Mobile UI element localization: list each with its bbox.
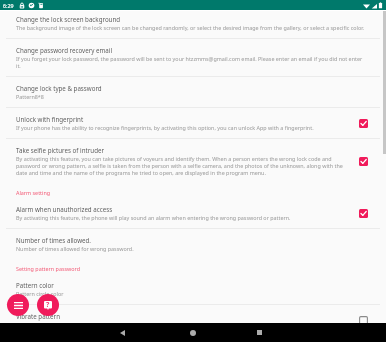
button[interactable]: Menu xyxy=(7,294,29,316)
button[interactable]: Back xyxy=(111,323,133,342)
staticText: Pattern circle color xyxy=(16,290,64,297)
staticText: Unlock with fingerprint xyxy=(16,115,84,123)
button[interactable]: Alarm when unauthorized access xyxy=(0,198,386,228)
staticText: If you forget your lock password, the pa… xyxy=(16,55,367,69)
staticText: Take selfie pictures of intruder xyxy=(16,146,104,154)
button[interactable]: Help xyxy=(37,294,59,316)
staticText: Setting pattern password xyxy=(16,265,80,272)
button[interactable]: Change lock type & password xyxy=(0,77,386,107)
staticText: Change lock type & password xyxy=(16,84,102,92)
button[interactable]: Change password recovery email xyxy=(0,39,386,76)
staticText: Number of times allowed. xyxy=(16,236,92,244)
staticText: The background image of the lock screen … xyxy=(16,24,364,31)
button[interactable]: Toggle xyxy=(352,313,374,323)
button[interactable]: Vibrate pattern xyxy=(0,305,386,323)
staticText: Change the lock screen background xyxy=(16,15,121,23)
button[interactable]: Recents xyxy=(248,323,270,342)
button[interactable]: Take selfie pictures of intruder xyxy=(0,139,386,183)
staticText: Alarm setting xyxy=(16,189,51,196)
staticText: Alarm when unauthorized access xyxy=(16,205,113,213)
button[interactable]: Number of times allowed. xyxy=(0,229,386,259)
staticText: Vibrate pattern xyxy=(16,312,60,320)
button[interactable]: Toggle xyxy=(352,154,374,168)
staticText: Pattern color xyxy=(16,281,54,289)
button[interactable]: Pattern color xyxy=(0,274,386,304)
staticText: Number of times allowed for wrong passwo… xyxy=(16,245,134,252)
staticText: By activating this feature, the phone wi… xyxy=(16,214,291,221)
staticText: Pattern8*8 xyxy=(16,93,44,100)
staticText: ? xyxy=(46,300,50,309)
staticText: 6:29 xyxy=(3,2,14,9)
button[interactable]: Unlock with fingerprint xyxy=(0,108,386,138)
staticText: If your phone has the ability to recogni… xyxy=(16,124,314,131)
button[interactable]: Home xyxy=(182,323,204,342)
button[interactable]: Toggle xyxy=(352,206,374,220)
button[interactable]: Toggle xyxy=(352,116,374,130)
staticText: By activating this feature, you can take… xyxy=(16,155,352,176)
staticText: Change password recovery email xyxy=(16,46,112,54)
button[interactable]: Change the lock screen background xyxy=(0,11,386,38)
